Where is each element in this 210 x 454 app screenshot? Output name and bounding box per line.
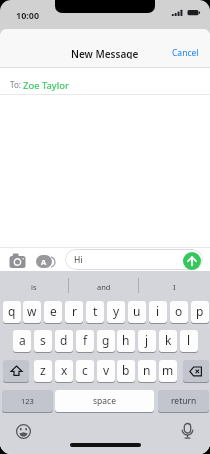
button[interactable]: w bbox=[23, 301, 41, 323]
button[interactable]: q bbox=[3, 301, 21, 323]
staticText: New Message bbox=[71, 47, 139, 59]
button[interactable]: a bbox=[13, 330, 31, 352]
staticText: b bbox=[122, 362, 130, 378]
button[interactable]: r bbox=[65, 301, 83, 323]
staticText: d bbox=[60, 332, 68, 348]
staticText: f bbox=[83, 332, 88, 348]
button[interactable]: b bbox=[117, 360, 135, 382]
staticText: l bbox=[187, 332, 191, 348]
staticText: t bbox=[93, 303, 98, 319]
button[interactable]: m bbox=[159, 360, 177, 382]
staticText: g bbox=[102, 332, 110, 348]
button[interactable]: 123 bbox=[2, 390, 53, 412]
button[interactable]: return bbox=[158, 390, 209, 412]
button[interactable]: Cancel bbox=[158, 47, 199, 58]
button[interactable]: u bbox=[128, 301, 146, 323]
button[interactable]: g bbox=[97, 330, 115, 352]
staticText: and bbox=[97, 282, 111, 292]
button[interactable] bbox=[0, 68, 210, 94]
staticText: h bbox=[122, 332, 130, 348]
button[interactable] bbox=[8, 252, 27, 269]
staticText: v bbox=[103, 362, 110, 378]
staticText: 123 bbox=[21, 396, 34, 406]
button[interactable]: n bbox=[138, 360, 156, 382]
staticText: return bbox=[171, 395, 197, 407]
staticText: r bbox=[72, 303, 77, 319]
button[interactable]: d bbox=[55, 330, 73, 352]
button[interactable]: z bbox=[34, 360, 52, 382]
staticText: m bbox=[162, 362, 174, 378]
button[interactable]: space bbox=[55, 390, 154, 412]
button[interactable]: h bbox=[117, 330, 135, 352]
staticText: k bbox=[165, 332, 172, 348]
staticText: z bbox=[40, 362, 46, 378]
button[interactable]: I bbox=[138, 280, 210, 293]
staticText: To: bbox=[10, 79, 21, 90]
button[interactable]: is bbox=[0, 280, 68, 293]
button[interactable]: x bbox=[55, 360, 73, 382]
staticText: a bbox=[19, 332, 26, 348]
button[interactable]: f bbox=[76, 330, 94, 352]
staticText: Cancel bbox=[172, 47, 199, 58]
staticText: I bbox=[173, 282, 176, 292]
staticText: u bbox=[133, 303, 141, 319]
staticText: y bbox=[113, 303, 120, 319]
staticText: i bbox=[156, 303, 160, 319]
button[interactable]: j bbox=[138, 330, 156, 352]
button[interactable] bbox=[65, 249, 203, 270]
staticText: p bbox=[196, 303, 204, 319]
staticText: s bbox=[40, 332, 46, 348]
staticText: w bbox=[27, 303, 37, 319]
button[interactable] bbox=[183, 252, 201, 270]
staticText: 10:00 bbox=[16, 9, 40, 21]
staticText: q bbox=[8, 303, 16, 319]
staticText: Zoe Taylor bbox=[23, 79, 69, 91]
button[interactable] bbox=[180, 420, 196, 441]
button[interactable]: A bbox=[36, 255, 52, 268]
button[interactable]: t bbox=[86, 301, 104, 323]
staticText: e bbox=[50, 303, 57, 319]
button[interactable]: o bbox=[170, 301, 188, 323]
button[interactable]: and bbox=[69, 280, 138, 293]
button[interactable]: v bbox=[97, 360, 115, 382]
staticText: n bbox=[143, 362, 151, 378]
button[interactable]: p bbox=[191, 301, 209, 323]
button[interactable] bbox=[183, 360, 209, 382]
staticText: c bbox=[82, 362, 88, 378]
button[interactable]: s bbox=[34, 330, 52, 352]
staticText: Hi bbox=[74, 254, 83, 266]
button[interactable]: e bbox=[44, 301, 62, 323]
staticText: x bbox=[61, 362, 68, 378]
staticText: space bbox=[93, 395, 116, 407]
staticText: o bbox=[175, 303, 183, 319]
button[interactable] bbox=[3, 360, 29, 382]
staticText: j bbox=[145, 332, 149, 348]
button[interactable]: y bbox=[107, 301, 125, 323]
button[interactable]: k bbox=[159, 330, 177, 352]
staticText: is bbox=[31, 282, 37, 292]
button[interactable]: l bbox=[180, 330, 198, 352]
button[interactable]: i bbox=[149, 301, 167, 323]
button[interactable]: c bbox=[76, 360, 94, 382]
staticText: A bbox=[41, 257, 47, 267]
button[interactable] bbox=[13, 421, 34, 442]
